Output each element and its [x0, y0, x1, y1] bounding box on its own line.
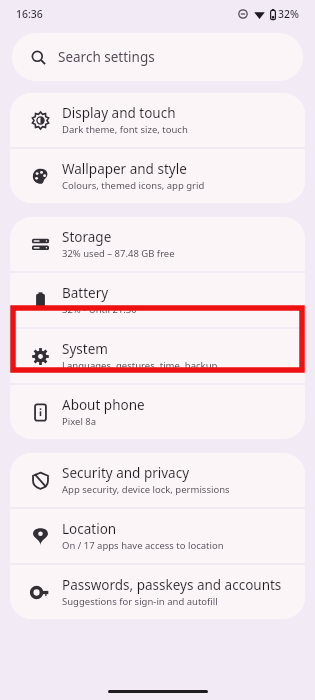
- staticText: Colours, themed icons, app grid: [62, 179, 205, 192]
- staticText: Security and privacy: [62, 464, 190, 482]
- other: Wallpaper and style: [32, 168, 49, 185]
- other: Location: [32, 528, 49, 545]
- other: About phone: [32, 404, 49, 421]
- staticText: Wallpaper and style: [62, 160, 187, 178]
- staticText: Location: [62, 520, 117, 538]
- staticText: 32% used – 87.48 GB free: [62, 247, 175, 260]
- staticText: 16:36: [16, 7, 43, 21]
- other: Display and touch: [32, 112, 49, 129]
- button[interactable]: Passwords, passkeys and accounts: [10, 565, 305, 619]
- staticText: App security, device lock, permissions: [62, 483, 230, 496]
- button[interactable]: Wallpaper and style: [10, 149, 305, 203]
- button[interactable]: Search settings: [12, 33, 303, 81]
- staticText: Languages, gestures, time, backup: [62, 359, 218, 372]
- staticText: On / 17 apps have access to location: [62, 539, 224, 552]
- staticText: Battery: [62, 284, 109, 302]
- staticText: About phone: [62, 396, 145, 414]
- button[interactable]: Location: [10, 509, 305, 563]
- other: Battery: [32, 292, 49, 309]
- button[interactable]: Security and privacy: [10, 453, 305, 507]
- staticText: Suggestions for sign-in and autofill: [62, 595, 218, 608]
- other: Security and privacy: [32, 472, 49, 489]
- other: System: [32, 348, 49, 365]
- staticText: System: [62, 340, 108, 358]
- staticText: Storage: [62, 228, 112, 246]
- staticText: Search settings: [58, 48, 155, 66]
- staticText: Display and touch: [62, 104, 176, 122]
- staticText: Pixel 8a: [62, 415, 97, 428]
- button[interactable]: System: [10, 329, 305, 383]
- other: Passwords, passkeys and accounts: [32, 584, 49, 601]
- button[interactable]: Display and touch: [10, 93, 305, 147]
- button[interactable]: About phone: [10, 385, 305, 439]
- button[interactable]: Storage: [10, 217, 305, 271]
- staticText: Passwords, passkeys and accounts: [62, 576, 282, 594]
- button[interactable]: Battery: [10, 273, 305, 327]
- staticText: 32% - Until 21:30: [62, 303, 137, 316]
- staticText: Dark theme, font size, touch: [62, 123, 188, 136]
- other: Storage: [32, 236, 49, 253]
- staticText: 32%: [278, 7, 299, 21]
